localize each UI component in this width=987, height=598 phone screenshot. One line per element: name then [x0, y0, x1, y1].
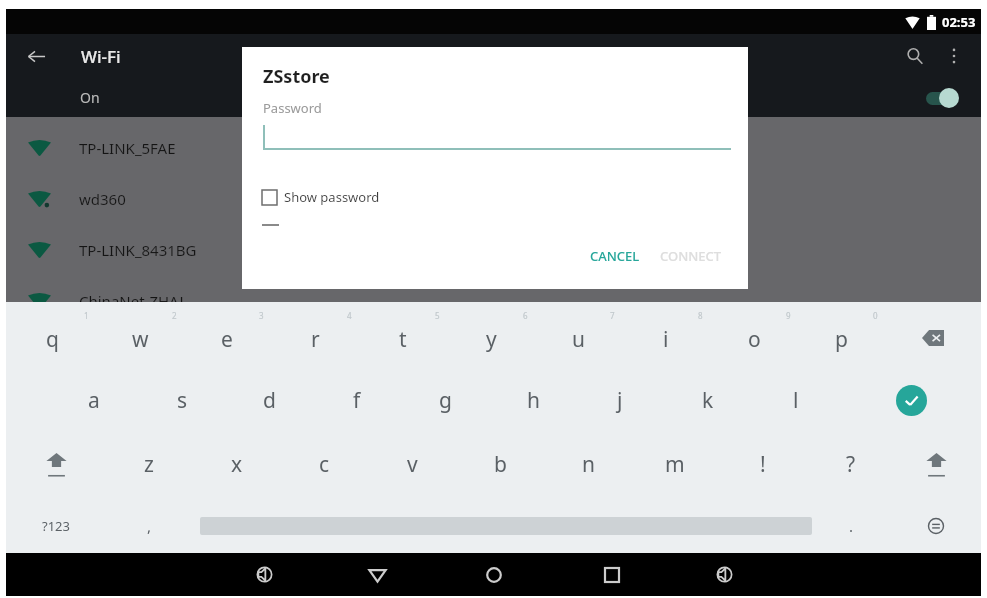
button[interactable]: 5	[360, 307, 446, 369]
button[interactable]: Navigate up	[6, 34, 66, 78]
staticText: o	[748, 325, 761, 354]
staticText: 3	[259, 310, 264, 321]
button[interactable]: m	[632, 433, 718, 495]
button[interactable]: Period	[808, 495, 894, 557]
button[interactable]: wd360	[6, 173, 981, 224]
button[interactable]: 4	[272, 307, 358, 369]
button[interactable]: x	[194, 433, 280, 495]
staticText: ?	[846, 450, 856, 479]
button[interactable]: More options	[927, 34, 981, 78]
button[interactable]: Space	[200, 509, 812, 543]
staticText: r	[311, 325, 320, 354]
staticText: 4	[347, 310, 352, 321]
button[interactable]: 9	[711, 307, 797, 369]
staticText: d	[263, 386, 276, 415]
button[interactable]: d	[226, 369, 312, 431]
button[interactable]: ?	[808, 433, 894, 495]
button[interactable]: Comma	[106, 495, 192, 557]
staticText: TP-LINK_8431BG	[79, 240, 197, 260]
staticText: j	[617, 386, 623, 415]
button[interactable]: Volume down	[242, 553, 286, 596]
button[interactable]: 0	[798, 307, 884, 369]
button[interactable]: CONNECT	[650, 239, 732, 273]
staticText: y	[486, 325, 497, 354]
staticText: Show password	[284, 188, 380, 206]
staticText: 2	[172, 310, 177, 321]
button[interactable]: Shift	[13, 433, 99, 495]
button[interactable]: a	[51, 369, 137, 431]
button[interactable]: 3	[184, 307, 270, 369]
staticText: Password	[263, 99, 322, 117]
button[interactable]: b	[457, 433, 543, 495]
staticText: CONNECT	[660, 247, 722, 265]
button[interactable]: Volume up	[702, 553, 746, 596]
staticText: n	[582, 450, 595, 479]
staticText: a	[88, 386, 100, 415]
button[interactable]: Back	[355, 553, 399, 596]
staticText: 02:53	[942, 13, 976, 31]
staticText: c	[319, 450, 330, 479]
staticText: p	[835, 325, 848, 354]
button[interactable]: !	[720, 433, 806, 495]
button[interactable]: s	[139, 369, 225, 431]
button[interactable]: Emoji	[893, 495, 979, 557]
button[interactable]: On	[6, 78, 981, 117]
button[interactable]: f	[314, 369, 400, 431]
button[interactable]: Done	[868, 369, 954, 431]
staticText: ChinaNet-ZHAJ	[79, 291, 184, 311]
staticText: s	[177, 386, 188, 415]
button[interactable]: CANCEL	[580, 239, 650, 273]
button[interactable]: 6	[448, 307, 534, 369]
button[interactable]: Home	[472, 553, 516, 596]
staticText: l	[793, 386, 799, 415]
button[interactable]: j	[577, 369, 663, 431]
button[interactable]: Show password	[262, 188, 380, 206]
staticText: Wi-Fi	[81, 45, 121, 68]
staticText: g	[439, 386, 452, 415]
button[interactable]: 1	[9, 307, 95, 369]
staticText: h	[527, 386, 540, 415]
staticText: z	[144, 450, 154, 479]
button[interactable]: z	[106, 433, 192, 495]
staticText: ,	[147, 516, 152, 536]
button[interactable]: l	[753, 369, 839, 431]
button[interactable]: n	[545, 433, 631, 495]
button[interactable]: Recent apps	[590, 553, 634, 596]
button[interactable]: Delete	[890, 307, 976, 369]
button[interactable]: c	[281, 433, 367, 495]
button[interactable]: 8	[623, 307, 709, 369]
staticText: 6	[523, 310, 528, 321]
staticText: k	[702, 386, 714, 415]
staticText: 5	[435, 310, 440, 321]
button[interactable]: Search	[891, 34, 939, 78]
staticText: On	[80, 88, 100, 107]
staticText: t	[399, 325, 407, 354]
staticText: 9	[786, 310, 791, 321]
button[interactable]: Shift	[893, 433, 979, 495]
staticText: q	[46, 325, 59, 354]
staticText: m	[665, 450, 685, 479]
button[interactable]: g	[402, 369, 488, 431]
staticText: e	[221, 325, 233, 354]
button[interactable]: 2	[97, 307, 183, 369]
staticText: TP-LINK_5FAE	[79, 138, 176, 158]
staticText: b	[494, 450, 507, 479]
button[interactable]: ChinaNet-ZHAJ	[6, 275, 981, 326]
staticText: 1	[84, 310, 89, 321]
staticText: wd360	[79, 189, 126, 209]
staticText: w	[132, 325, 149, 354]
staticText: v	[407, 450, 418, 479]
staticText: 0	[873, 310, 878, 321]
button[interactable]: 7	[535, 307, 621, 369]
button[interactable]: TP-LINK_8431BG	[6, 224, 981, 275]
staticText: .	[849, 516, 854, 536]
button[interactable]: TP-LINK_5FAE	[6, 122, 981, 173]
button[interactable]: Symbols	[13, 495, 99, 557]
button[interactable]: k	[665, 369, 751, 431]
button[interactable]: Wi-Fi on	[923, 87, 959, 109]
button[interactable]: h	[490, 369, 576, 431]
staticText: x	[231, 450, 243, 479]
staticText: i	[663, 325, 669, 354]
button[interactable]: v	[369, 433, 455, 495]
staticText: 8	[698, 310, 703, 321]
